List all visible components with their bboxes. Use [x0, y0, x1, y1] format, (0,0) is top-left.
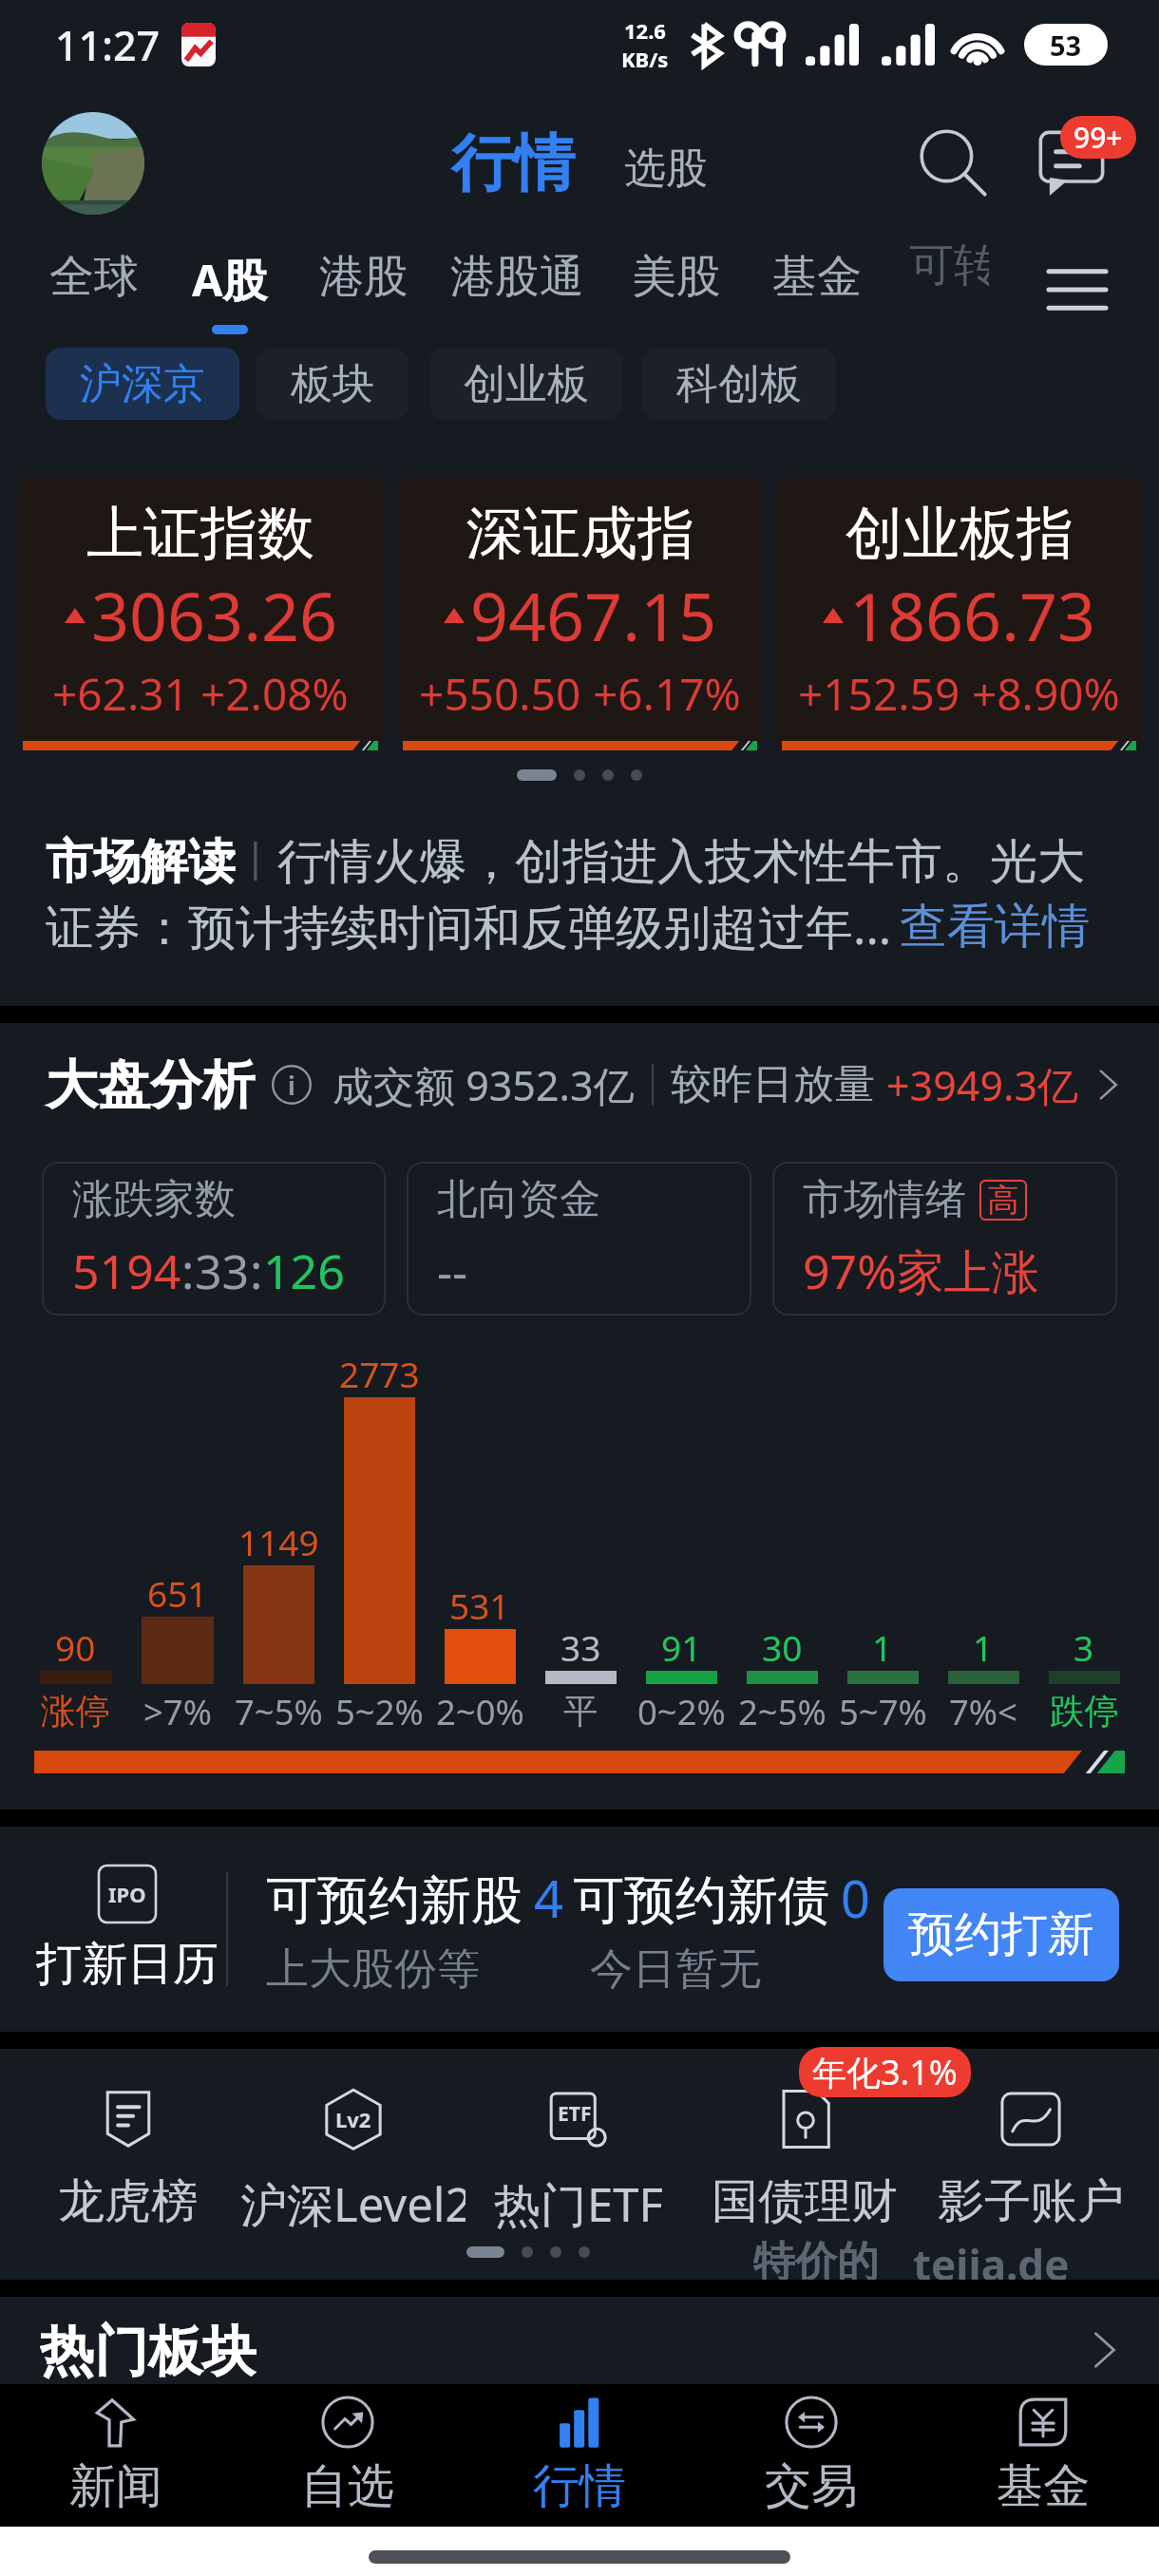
button[interactable]: ETF	[465, 2089, 692, 2236]
button[interactable]: 基金	[927, 2384, 1159, 2527]
button[interactable]: 港股通	[450, 237, 584, 330]
button[interactable]: 板块	[256, 348, 408, 420]
staticText: 新闻	[69, 2457, 162, 2516]
button[interactable]: 影子账户	[918, 2089, 1144, 2231]
button[interactable]: 深证成指	[397, 477, 763, 750]
staticText: 打新日历	[36, 1936, 218, 1993]
button[interactable]: 年化3.1%	[692, 2089, 918, 2231]
button[interactable]: 选股	[624, 142, 708, 195]
button[interactable]: 自选	[232, 2384, 464, 2527]
staticText: 龙虎榜	[58, 2172, 198, 2231]
button[interactable]: Lv2	[240, 2089, 465, 2236]
staticText: 53	[1050, 27, 1082, 64]
staticText: 深证成指	[466, 498, 694, 570]
staticText: 自选	[301, 2457, 394, 2516]
staticText: tejia.de	[913, 2236, 1070, 2280]
button[interactable]: More tabs	[1049, 268, 1106, 312]
button[interactable]: 新闻	[0, 2384, 232, 2527]
button[interactable]: 大盘分析	[0, 1046, 1159, 1124]
staticText: 涨停	[41, 1690, 110, 1733]
staticText: 3063.26	[91, 570, 337, 660]
staticText: +152.59	[798, 664, 960, 724]
staticText: 0	[841, 1863, 870, 1933]
staticText: 较昨日放量	[671, 1059, 875, 1110]
staticText: 科创板	[676, 358, 802, 410]
staticText: +2.08%	[200, 664, 349, 724]
staticText: 33	[195, 1239, 250, 1303]
staticText: 30	[762, 1623, 803, 1671]
button[interactable]: 涨跌家数	[42, 1162, 386, 1316]
staticText: 查看详情	[900, 897, 1090, 957]
button[interactable]: 龙虎榜	[15, 2089, 240, 2231]
button[interactable]: 预约打新	[883, 1888, 1119, 1981]
staticText: 上证指数	[86, 498, 314, 570]
staticText: i	[288, 1069, 295, 1102]
staticText: 跌停	[1050, 1690, 1119, 1733]
staticText: 创业板指	[845, 498, 1073, 570]
staticText: 全球	[49, 249, 139, 305]
staticText: 1	[872, 1623, 893, 1671]
button[interactable]: 交易	[695, 2384, 927, 2527]
staticText: :	[181, 1239, 195, 1303]
staticText: 行情	[533, 2457, 626, 2516]
staticText: 1149	[238, 1518, 319, 1565]
staticText: +3949.3亿	[886, 1057, 1079, 1113]
staticText: 行情火爆，创指进入技术性牛市。光大	[277, 832, 1085, 892]
staticText: 涨跌家数	[72, 1174, 236, 1225]
staticText: 平	[563, 1690, 598, 1733]
staticText: 1	[973, 1623, 994, 1671]
staticText: 5~7%	[839, 1688, 927, 1735]
staticText: 美股	[632, 249, 721, 305]
staticText: 选股	[624, 142, 708, 195]
button[interactable]: 科创板	[642, 348, 836, 420]
staticText: 可预约新债	[573, 1868, 829, 1933]
staticText: >7%	[143, 1688, 212, 1735]
staticText: 5~2%	[335, 1688, 424, 1735]
staticText: 97%家上涨	[803, 1239, 1039, 1303]
button[interactable]: 创业板指	[776, 477, 1142, 750]
button[interactable]: 上证指数	[17, 477, 384, 750]
button[interactable]: 行情	[464, 2384, 695, 2527]
button[interactable]: A股	[192, 237, 268, 334]
staticText: 沪深Level2	[240, 2172, 465, 2236]
button[interactable]: 行情	[451, 124, 575, 202]
button[interactable]: 创业板	[429, 348, 623, 420]
staticText: 大盘分析	[46, 1052, 255, 1118]
button[interactable]: 全球	[49, 237, 139, 330]
staticText: 高	[987, 1180, 1019, 1221]
button[interactable]: 美股	[632, 237, 721, 330]
staticText: +62.31	[52, 664, 189, 724]
button[interactable]: 北向资金	[407, 1162, 751, 1316]
staticText: 7~5%	[235, 1688, 323, 1735]
staticText: :	[250, 1239, 263, 1303]
button[interactable]: 基金	[772, 237, 862, 330]
staticText: Lv2	[335, 2105, 371, 2133]
staticText: 港股	[319, 249, 408, 305]
staticText: 可预约新股	[266, 1868, 522, 1933]
button[interactable]: Search	[912, 122, 996, 205]
staticText: 90	[55, 1623, 96, 1671]
staticText: 99+	[1073, 118, 1123, 157]
button[interactable]: Messages	[1030, 122, 1113, 205]
staticText: 2773	[339, 1350, 420, 1397]
staticText: 丨	[236, 836, 277, 888]
staticText: 市场情绪	[803, 1174, 966, 1225]
staticText: 基金	[997, 2457, 1090, 2516]
button[interactable]: 市场解读	[0, 781, 1159, 958]
staticText: 33	[560, 1623, 601, 1671]
staticText: 创业板	[464, 358, 589, 410]
staticText: 4	[534, 1863, 563, 1933]
button[interactable]: 沪深京	[46, 348, 239, 420]
staticText: 1866.73	[849, 570, 1095, 660]
button[interactable]: Profile	[42, 112, 144, 215]
button[interactable]: 市场情绪	[772, 1162, 1117, 1316]
staticText: +6.17%	[593, 664, 741, 724]
staticText: 0~2%	[637, 1688, 726, 1735]
staticText: 9467.15	[470, 570, 716, 660]
staticText: 126	[263, 1239, 345, 1303]
button[interactable]: IPO	[36, 1866, 218, 1993]
button[interactable]: 港股	[319, 237, 408, 330]
button[interactable]: 热门板块	[0, 2297, 1159, 2382]
staticText: 531	[449, 1582, 510, 1629]
staticText: 651	[147, 1569, 208, 1617]
